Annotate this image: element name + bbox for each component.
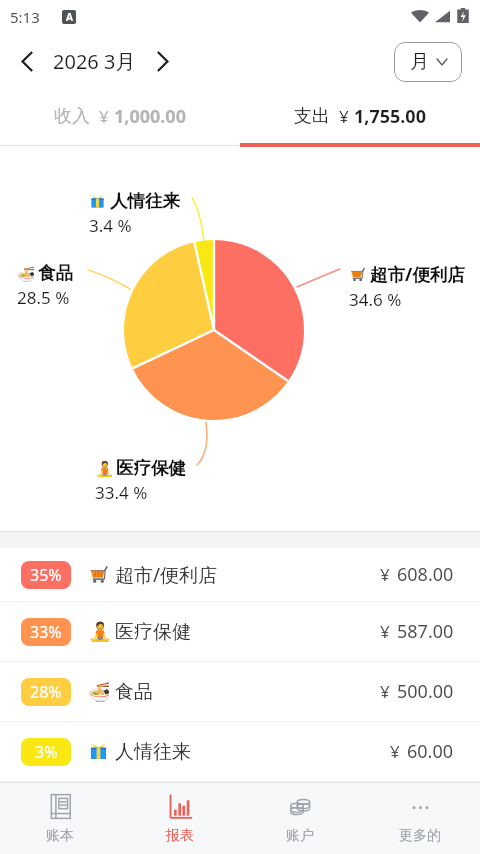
button[interactable]: 收入 — [0, 90, 240, 143]
button[interactable]: Next month — [145, 44, 180, 79]
button[interactable]: Previous month — [10, 44, 45, 79]
staticText: 超市/便利店 — [115, 562, 218, 588]
staticText: 28.5 % — [17, 286, 70, 309]
staticText: 1,755.00 — [354, 104, 426, 129]
button[interactable]: 28% — [0, 662, 480, 721]
button[interactable]: 账户 — [240, 783, 360, 854]
button[interactable]: 更多的 — [360, 783, 480, 854]
staticText: 超市/便利店 — [370, 262, 465, 286]
staticText: 28% — [30, 681, 62, 703]
button[interactable]: 3% — [0, 722, 480, 781]
button[interactable]: 月 — [394, 42, 462, 82]
staticText: 33% — [30, 621, 62, 643]
staticText: 5:13 — [10, 7, 40, 27]
staticText: 60.00 — [407, 739, 454, 764]
staticText: 2026 3月 — [53, 48, 136, 75]
staticText: 更多的 — [399, 827, 441, 845]
staticText: 3% — [35, 741, 58, 763]
staticText: 🍜 — [17, 265, 34, 282]
staticText: 34.6 % — [349, 288, 402, 311]
staticText: 医疗保健 — [116, 457, 186, 479]
staticText: 1,000.00 — [114, 104, 186, 129]
staticText: 587.00 — [397, 619, 454, 644]
staticText: 食品 — [115, 680, 153, 704]
button[interactable]: 账本 — [0, 783, 120, 854]
staticText: ¥ — [390, 740, 400, 763]
staticText: 支出 — [294, 105, 330, 128]
staticText: 报表 — [166, 827, 194, 845]
staticText: ¥ — [380, 563, 390, 586]
staticText: A — [66, 10, 73, 24]
staticText: 医疗保健 — [115, 620, 191, 644]
staticText: 月 — [410, 50, 429, 74]
staticText: 608.00 — [397, 562, 454, 587]
staticText: 35% — [30, 564, 62, 586]
button[interactable]: 33% — [0, 602, 480, 661]
staticText: ¥ — [380, 620, 390, 643]
staticText: 人情往来 — [110, 190, 180, 212]
staticText: 3.4 % — [89, 214, 132, 237]
staticText: 🍜 — [88, 681, 109, 702]
staticText: 账本 — [46, 827, 74, 845]
staticText: 🧘 — [95, 460, 112, 477]
staticText: ¥ — [339, 105, 349, 128]
staticText: 食品 — [38, 262, 73, 284]
staticText: 🧘 — [88, 621, 109, 642]
staticText: 账户 — [286, 827, 314, 845]
staticText: 收入 — [54, 105, 90, 128]
staticText: 33.4 % — [95, 481, 148, 504]
button[interactable]: 35% — [0, 548, 480, 601]
staticText: ¥ — [380, 680, 390, 703]
staticText: 500.00 — [397, 679, 454, 704]
staticText: 人情往来 — [115, 740, 191, 764]
button[interactable]: 支出 — [240, 90, 480, 143]
staticText: ¥ — [99, 105, 109, 128]
button[interactable]: 报表 — [120, 783, 240, 854]
